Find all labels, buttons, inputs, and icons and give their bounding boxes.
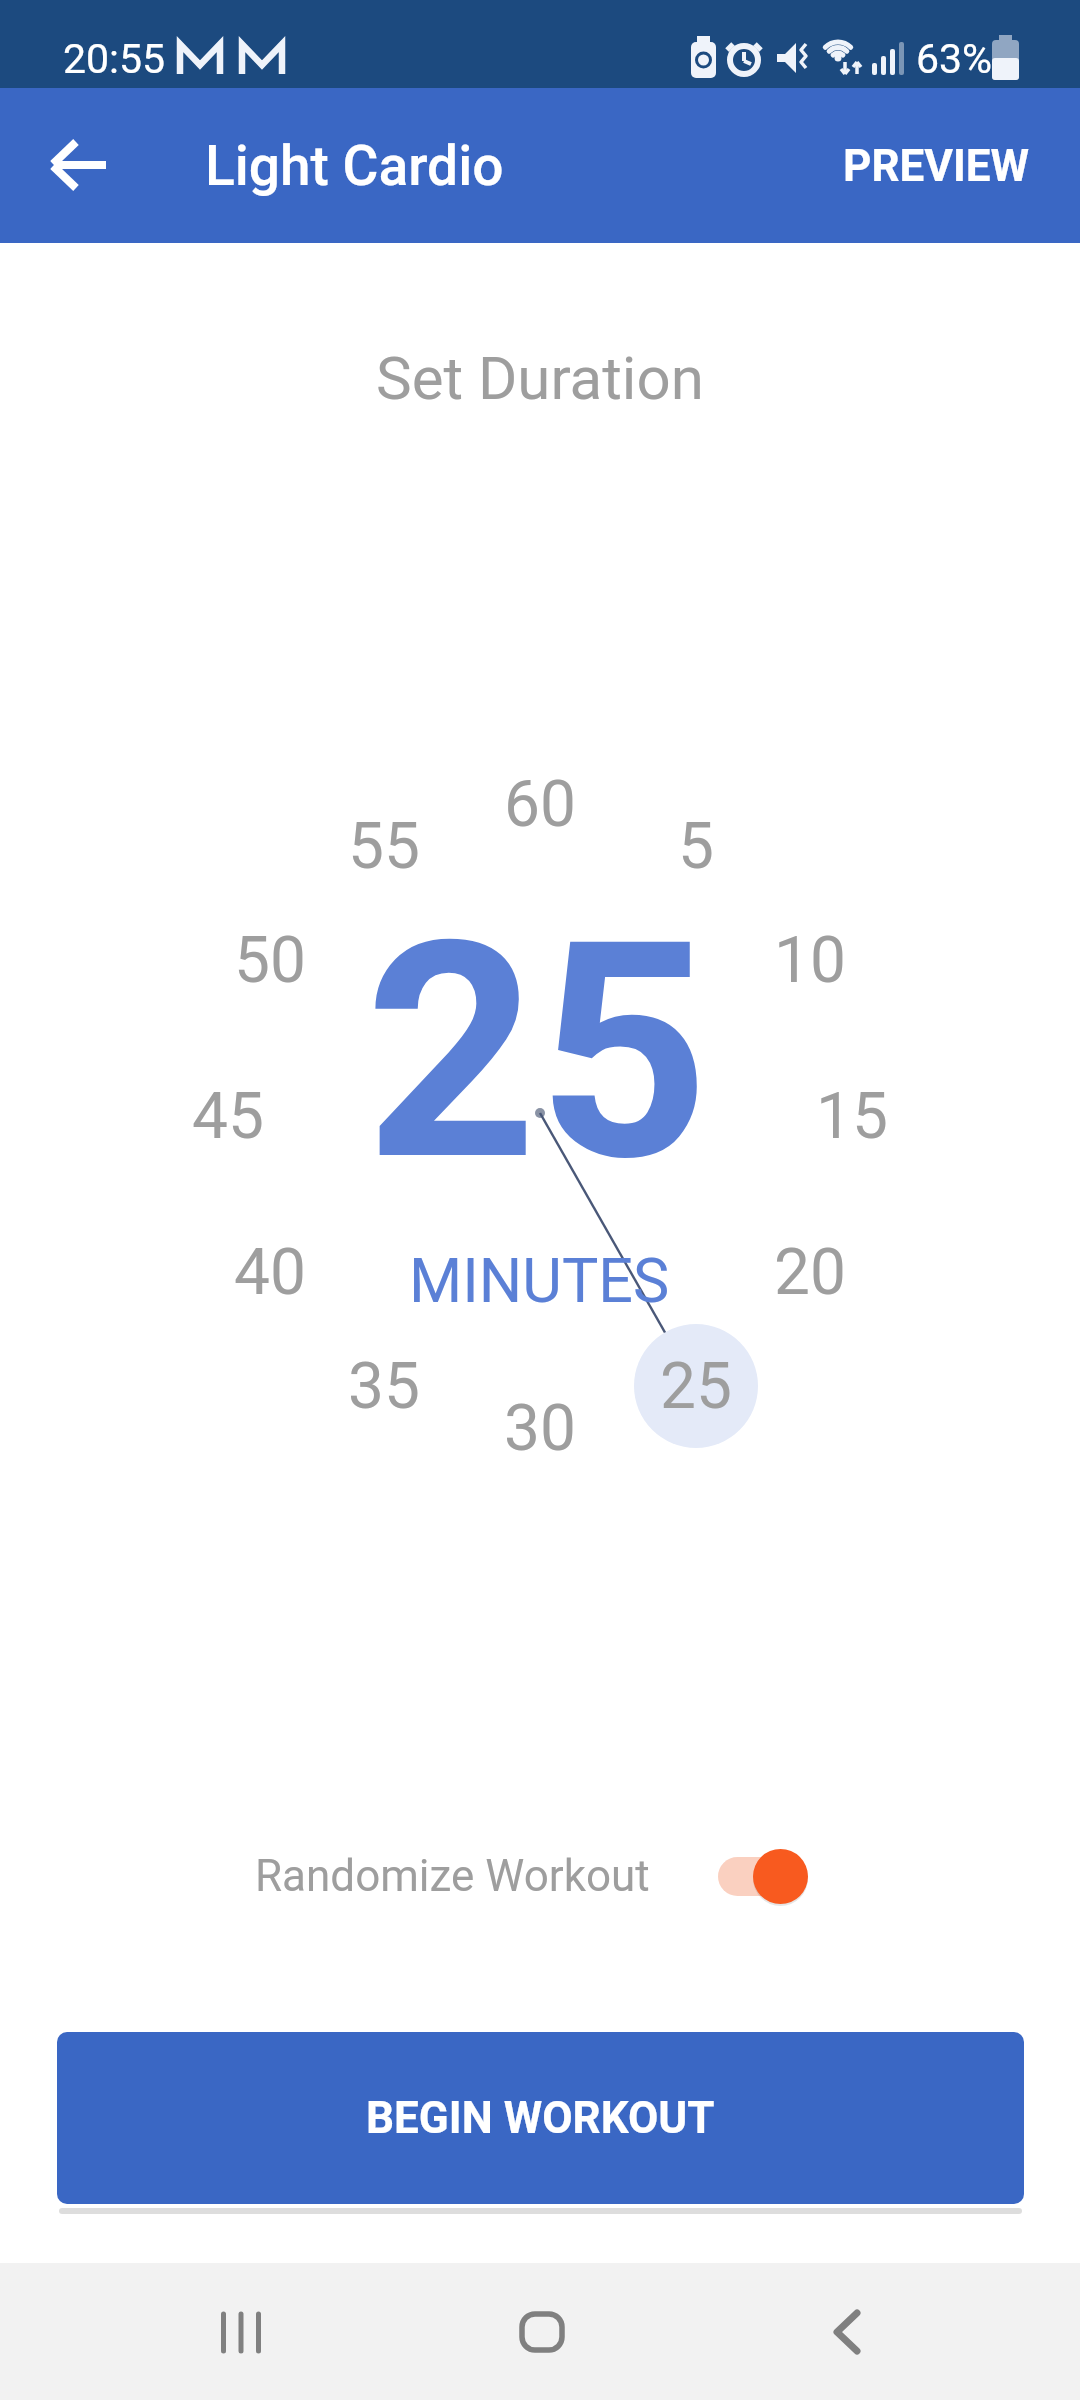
staticText: 60 (504, 767, 576, 842)
staticText: Set Duration (376, 343, 704, 413)
staticText: 20 (774, 1235, 846, 1310)
staticText: 30 (504, 1391, 576, 1466)
staticText: Light Cardio (205, 134, 504, 198)
staticText: 55 (348, 809, 420, 884)
button[interactable]: Randomize Workout (255, 1840, 675, 1912)
staticText: 45 (192, 1079, 264, 1154)
staticText: 50 (234, 923, 306, 998)
staticText: Randomize Workout (255, 1850, 650, 1902)
button[interactable] (28, 113, 132, 217)
staticText: 15 (816, 1079, 888, 1154)
button[interactable] (187, 2277, 297, 2387)
staticText: BEGIN WORKOUT (366, 2092, 715, 2144)
button[interactable] (710, 1840, 820, 1912)
button[interactable] (487, 2277, 597, 2387)
staticText: 35 (348, 1349, 420, 1424)
staticText: 25 (660, 1349, 732, 1424)
staticText: MINUTES (409, 1245, 670, 1316)
staticText: 5 (678, 809, 714, 884)
button[interactable]: BEGIN WORKOUT (57, 2032, 1024, 2204)
button[interactable]: PREVIEW (843, 118, 1053, 213)
staticText: 25 (365, 877, 710, 1229)
staticText: 10 (774, 923, 846, 998)
staticText: PREVIEW (843, 140, 1030, 192)
staticText: 20:55 (63, 35, 166, 83)
staticText: 63% (916, 35, 993, 83)
button[interactable] (792, 2277, 902, 2387)
staticText: 40 (234, 1235, 306, 1310)
